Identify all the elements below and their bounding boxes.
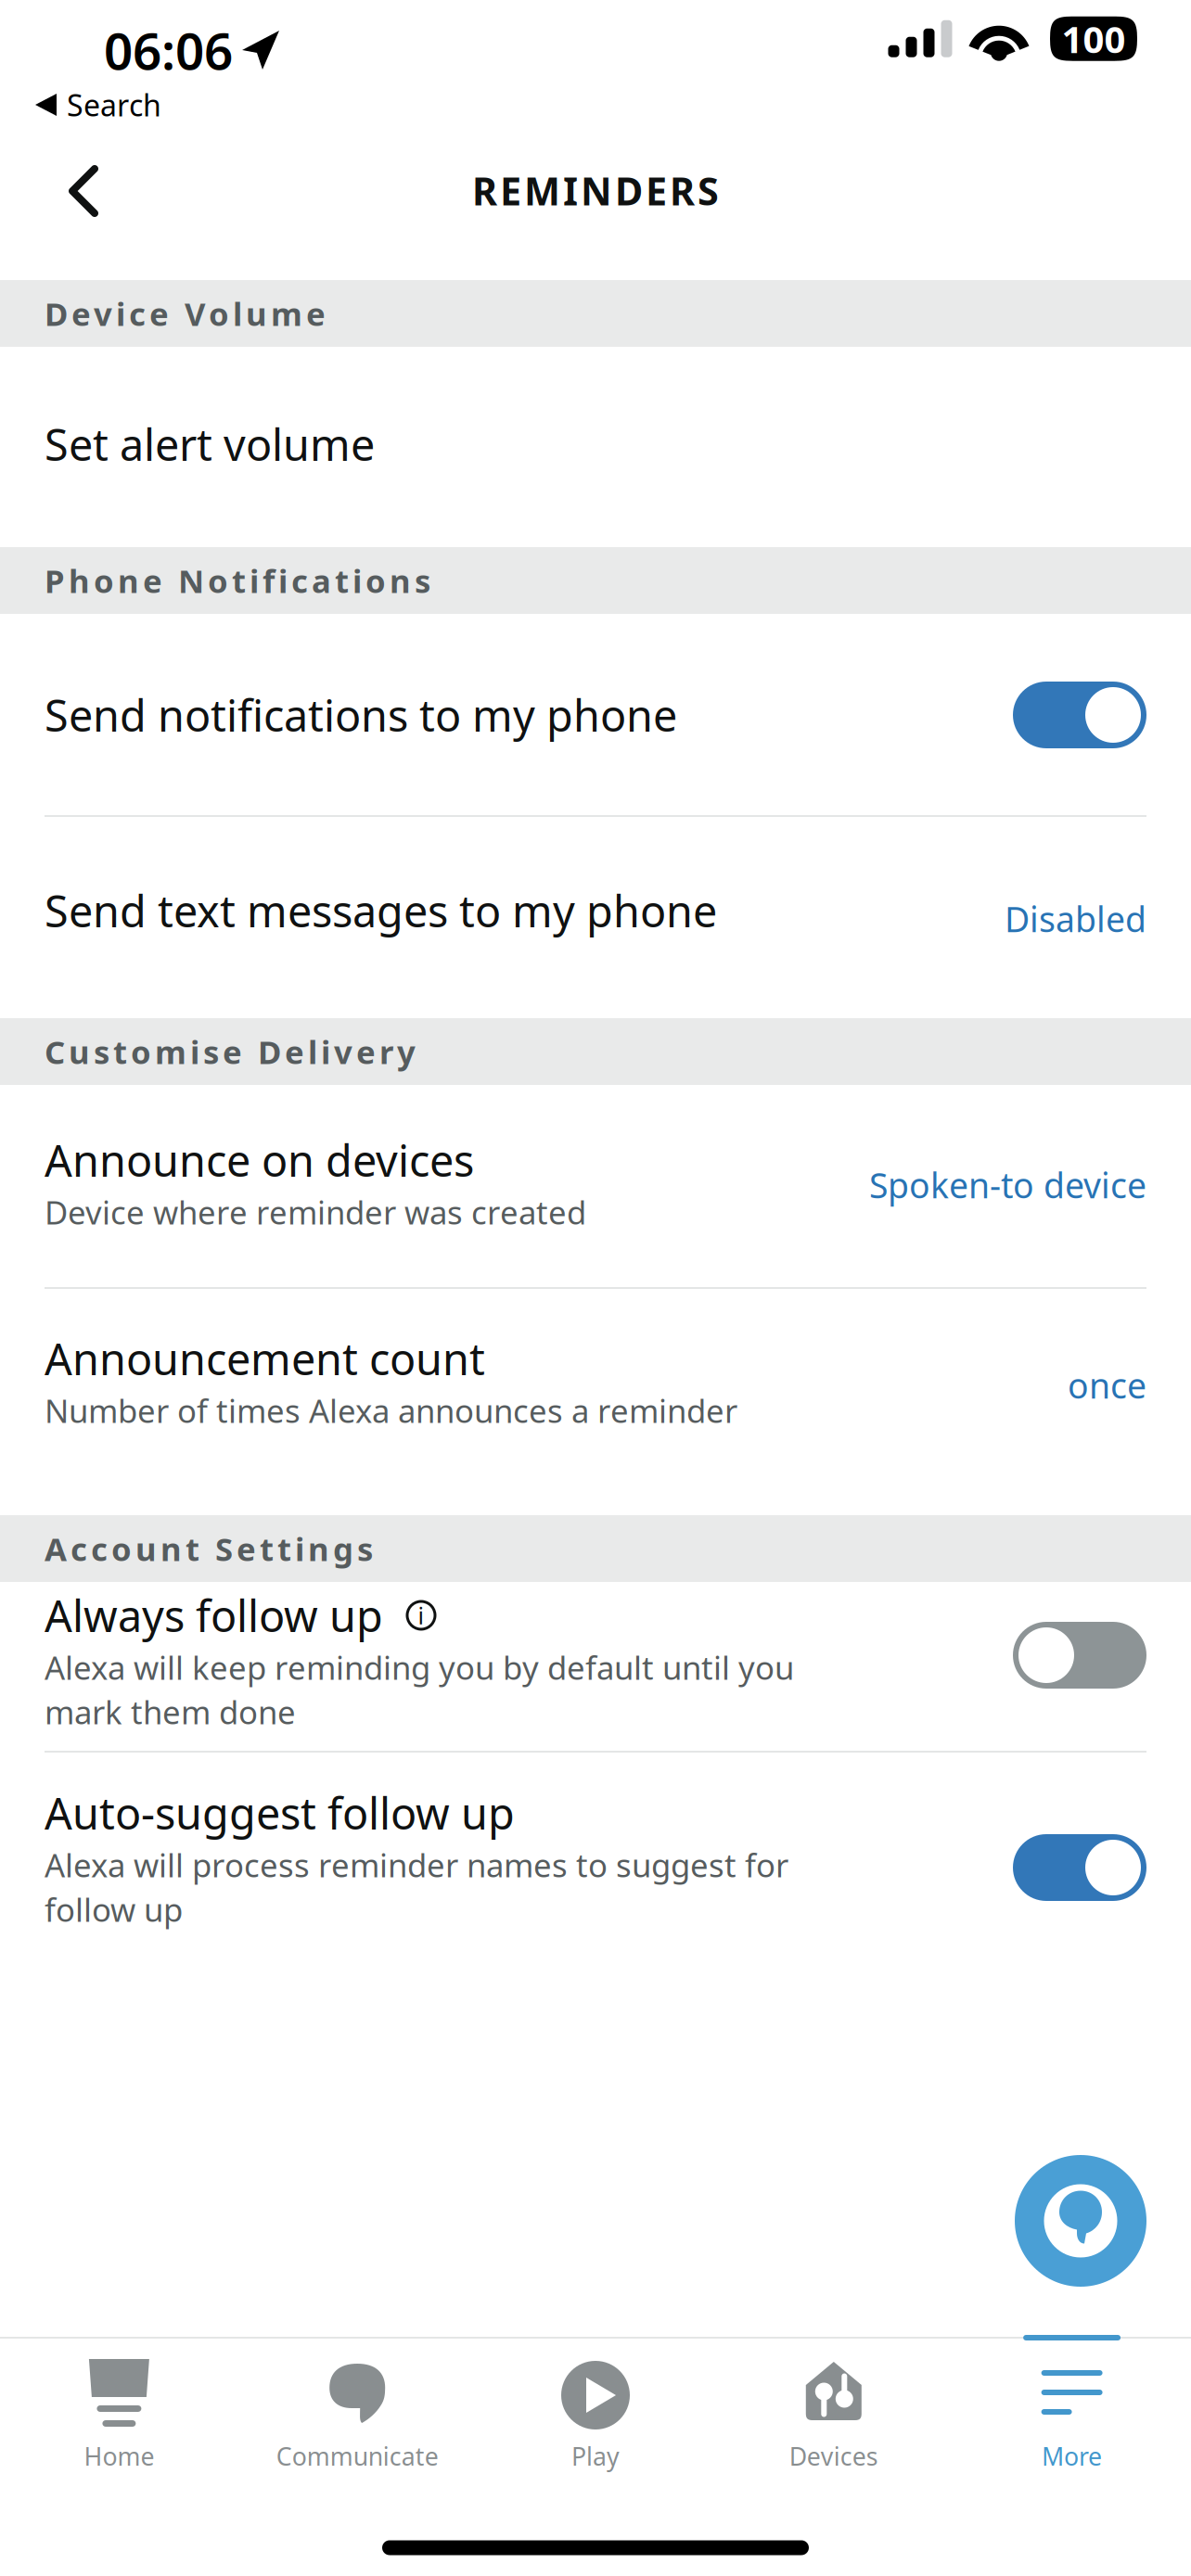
button[interactable]: Auto-suggest follow up: [0, 1753, 1191, 1925]
button[interactable]: Send text messages to my phone: [0, 817, 1191, 1018]
button[interactable]: Home: [0, 2339, 238, 2483]
staticText: mark them done: [45, 1690, 296, 1733]
staticText: Send text messages to my phone: [45, 882, 717, 939]
button[interactable]: Back: [0, 152, 167, 263]
button[interactable]: Send notifications to my phone: [0, 614, 1191, 815]
button[interactable]: Communicate: [238, 2339, 476, 2483]
staticText: Communicate: [276, 2440, 438, 2473]
staticText: Alexa will keep reminding you by default…: [45, 1646, 794, 1689]
staticText: Number of times Alexa announces a remind…: [45, 1389, 737, 1432]
staticText: Auto-suggest follow up: [45, 1784, 515, 1842]
button[interactable]: Always follow up: [0, 1582, 1191, 1751]
staticText: Device Volume: [45, 292, 326, 335]
staticText: Play: [571, 2440, 620, 2473]
staticText: Search: [67, 85, 161, 125]
staticText: Devices: [789, 2440, 878, 2473]
staticText: Customise Delivery: [45, 1030, 416, 1073]
staticText: Disabled: [1005, 896, 1146, 942]
staticText: follow up: [45, 1888, 183, 1931]
staticText: Set alert volume: [45, 415, 375, 473]
button[interactable]: Devices: [715, 2339, 953, 2483]
staticText: once: [1068, 1362, 1146, 1408]
staticText: More: [1042, 2440, 1102, 2473]
button[interactable]: Play: [476, 2339, 715, 2483]
button[interactable]: Set alert volume: [0, 347, 1191, 547]
button[interactable]: More: [953, 2339, 1191, 2483]
button[interactable]: Announce on devices: [0, 1085, 1191, 1287]
button[interactable]: Announcement count: [0, 1289, 1191, 1515]
staticText: Alexa will process reminder names to sug…: [45, 1843, 788, 1886]
staticText: Account Settings: [45, 1527, 373, 1570]
staticText: 06:06: [104, 16, 233, 84]
staticText: Announcement count: [45, 1330, 485, 1387]
button[interactable]: Search: [0, 74, 1191, 135]
staticText: Device where reminder was created: [45, 1191, 586, 1233]
button[interactable]: Alexa: [1015, 2155, 1146, 2287]
staticText: Spoken-to device: [869, 1162, 1146, 1208]
staticText: Home: [84, 2440, 154, 2473]
staticText: Announce on devices: [45, 1131, 474, 1189]
staticText: 100: [1062, 14, 1126, 63]
staticText: Always follow up: [45, 1587, 383, 1644]
staticText: Phone Notifications: [45, 559, 430, 602]
staticText: REMINDERS: [472, 165, 719, 216]
staticText: Send notifications to my phone: [45, 686, 677, 744]
staticText: i: [418, 1600, 424, 1631]
